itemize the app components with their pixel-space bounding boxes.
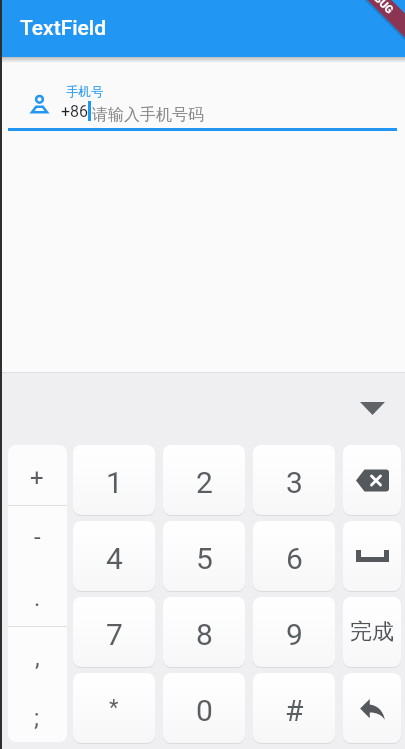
staticText: 7 [106,617,123,652]
staticText: . [34,584,41,612]
button[interactable]: 7 [73,597,155,667]
button[interactable]: - [17,507,57,567]
staticText: , [35,644,40,672]
button[interactable]: 完成 [343,597,401,667]
staticText: 完成 [350,618,394,646]
button[interactable]: 8 [163,597,245,667]
button[interactable] [343,445,401,515]
button[interactable]: * [73,673,155,743]
button[interactable]: ; [17,688,57,748]
staticText: 3 [286,465,303,500]
button[interactable] [343,521,401,591]
staticText: * [109,695,119,721]
staticText: 9 [286,617,303,652]
button[interactable]: 2 [163,445,245,515]
staticText: 8 [196,617,213,652]
button[interactable]: 5 [163,521,245,591]
staticText: 0 [196,693,213,728]
staticText: DEBUG [362,0,396,17]
button[interactable]: 6 [253,521,335,591]
staticText: # [285,693,304,728]
button[interactable]: 9 [253,597,335,667]
staticText: ; [34,704,40,732]
button[interactable]: 3 [253,445,335,515]
staticText: 6 [286,541,303,576]
button[interactable]: , [17,628,57,688]
button[interactable] [8,62,397,131]
staticText: TextField [20,16,107,41]
staticText: 手机号 [66,84,104,100]
button[interactable]: + [17,448,57,508]
button[interactable]: 0 [163,673,245,743]
button[interactable] [348,390,396,426]
staticText: 4 [106,541,123,576]
button[interactable]: 1 [73,445,155,515]
staticText: 请输入手机号码 [92,105,204,125]
staticText: - [34,523,41,551]
button[interactable]: 4 [73,521,155,591]
staticText: +86 [61,102,89,121]
staticText: + [30,464,44,492]
staticText: 1 [106,465,123,500]
staticText: 2 [196,465,213,500]
button[interactable] [343,673,401,743]
button[interactable]: . [17,568,57,628]
button[interactable]: # [253,673,335,743]
staticText: 5 [196,541,213,576]
